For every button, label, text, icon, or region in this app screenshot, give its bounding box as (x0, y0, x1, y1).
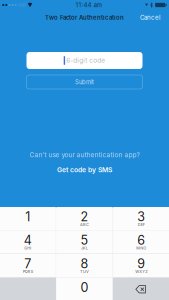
staticText: DEF (138, 222, 145, 227)
staticText: 6-digit code (66, 57, 105, 64)
staticText: Two Factor Authentication (45, 14, 124, 21)
staticText: Get code by SMS (57, 166, 112, 174)
staticText: PQRS (23, 269, 33, 274)
staticText: MNO (136, 246, 146, 250)
staticText: 11:44 am (76, 1, 102, 9)
button[interactable]: 4 (0, 230, 56, 253)
staticText: 6 (137, 233, 145, 248)
staticText: GHI (24, 246, 31, 250)
staticText: 8 (80, 256, 88, 271)
staticText: ABC (80, 222, 89, 227)
staticText: Submit (75, 78, 94, 86)
button[interactable]: Get code by SMS (48, 165, 120, 175)
button[interactable]: 5 (56, 230, 113, 253)
staticText: AT&T (18, 3, 27, 7)
staticText: 1 (25, 209, 30, 224)
button[interactable]: Submit (26, 75, 142, 89)
staticText: Can't use your authentication app? (29, 151, 139, 159)
button[interactable]: 6 (113, 230, 169, 253)
staticText: 4 (24, 233, 32, 248)
button[interactable]: 1 (0, 207, 56, 230)
staticText: 0 (80, 280, 88, 295)
button[interactable]: Delete (113, 277, 169, 300)
staticText: WXYZ (135, 269, 147, 274)
button[interactable]: 3 (113, 207, 169, 230)
staticText: 2 (80, 209, 88, 224)
staticText: 3 (137, 209, 145, 224)
button[interactable]: 8 (56, 254, 113, 277)
staticText: JKL (81, 246, 88, 250)
staticText: 7 (24, 256, 31, 271)
button[interactable]: 7 (0, 254, 56, 277)
button[interactable]: 0 (56, 278, 113, 300)
button[interactable]: 2 (56, 207, 113, 230)
button[interactable]: 9 (113, 254, 169, 277)
staticText: 9 (137, 256, 145, 271)
staticText: TUV (80, 269, 89, 274)
button[interactable]: Cancel (136, 10, 164, 24)
staticText: 5 (80, 233, 88, 248)
staticText: Cancel (140, 14, 160, 21)
